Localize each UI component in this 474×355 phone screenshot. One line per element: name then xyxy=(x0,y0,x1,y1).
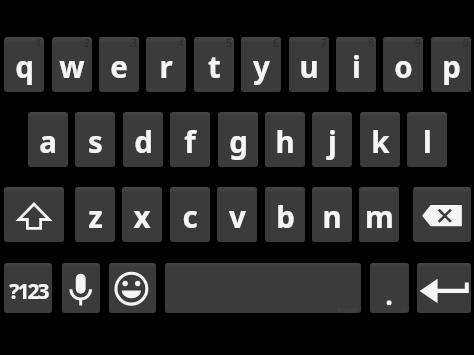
staticText: b xyxy=(276,196,295,236)
staticText: q xyxy=(15,46,34,86)
staticText: m xyxy=(365,196,394,236)
staticText: x xyxy=(133,196,151,236)
button[interactable]: c xyxy=(170,187,210,242)
button[interactable]: Emoji xyxy=(109,263,156,313)
button[interactable]: Period xyxy=(370,263,409,313)
staticText: k xyxy=(371,121,390,161)
staticText: c xyxy=(182,196,198,236)
staticText: ?123 xyxy=(9,277,48,306)
staticText: 5 xyxy=(226,37,232,50)
staticText: n xyxy=(322,196,342,236)
button[interactable]: i xyxy=(336,37,376,92)
staticText: 4 xyxy=(178,37,184,50)
staticText: r xyxy=(159,46,173,86)
staticText: u xyxy=(299,46,319,86)
staticText: t xyxy=(208,46,221,86)
button[interactable]: Shift xyxy=(4,187,64,242)
staticText: 2 xyxy=(84,37,90,50)
button[interactable]: r xyxy=(146,37,186,92)
staticText: e xyxy=(110,46,128,86)
staticText: p xyxy=(442,46,461,86)
button[interactable]: h xyxy=(265,112,305,167)
button[interactable]: d xyxy=(123,112,163,167)
button[interactable]: v xyxy=(217,187,257,242)
staticText: 6 xyxy=(273,37,279,50)
staticText: g xyxy=(229,121,248,161)
staticText: o xyxy=(394,46,413,86)
staticText: i xyxy=(352,46,361,86)
button[interactable]: s xyxy=(75,112,115,167)
staticText: 1 xyxy=(36,37,42,50)
button[interactable]: e xyxy=(99,37,139,92)
button[interactable]: a xyxy=(28,112,68,167)
staticText: 9 xyxy=(415,37,421,50)
button[interactable]: j xyxy=(312,112,352,167)
staticText: w xyxy=(59,46,85,86)
staticText: s xyxy=(88,121,103,161)
staticText: j xyxy=(328,121,337,161)
staticText: a xyxy=(39,121,57,161)
button[interactable]: ?123 xyxy=(4,263,52,313)
staticText: 7 xyxy=(321,37,327,50)
button[interactable]: f xyxy=(170,112,210,167)
staticText: y xyxy=(253,46,270,86)
staticText: h xyxy=(275,121,295,161)
button[interactable]: x xyxy=(122,187,162,242)
staticText: f xyxy=(184,121,196,161)
button[interactable]: k xyxy=(360,112,400,167)
staticText: 0 xyxy=(463,37,469,50)
button[interactable]: l xyxy=(407,112,447,167)
button[interactable]: m xyxy=(359,187,399,242)
button[interactable]: y xyxy=(241,37,281,92)
button[interactable]: p xyxy=(431,37,471,92)
button[interactable]: Backspace xyxy=(413,187,471,242)
button[interactable]: g xyxy=(218,112,258,167)
button[interactable]: w xyxy=(52,37,92,92)
staticText: English xyxy=(338,306,359,313)
staticText: l xyxy=(423,121,432,161)
staticText: z xyxy=(88,196,103,236)
button[interactable]: z xyxy=(75,187,115,242)
staticText: d xyxy=(134,121,153,161)
staticText: 8 xyxy=(368,37,374,50)
button[interactable]: Voice input xyxy=(62,263,100,313)
button[interactable]: u xyxy=(289,37,329,92)
button[interactable]: Enter xyxy=(417,263,471,313)
staticText: 3 xyxy=(131,37,137,50)
button[interactable]: b xyxy=(265,187,305,242)
button[interactable]: q xyxy=(4,37,44,92)
button[interactable]: o xyxy=(383,37,423,92)
button[interactable]: n xyxy=(312,187,352,242)
button[interactable]: t xyxy=(194,37,234,92)
staticText: v xyxy=(229,196,246,236)
